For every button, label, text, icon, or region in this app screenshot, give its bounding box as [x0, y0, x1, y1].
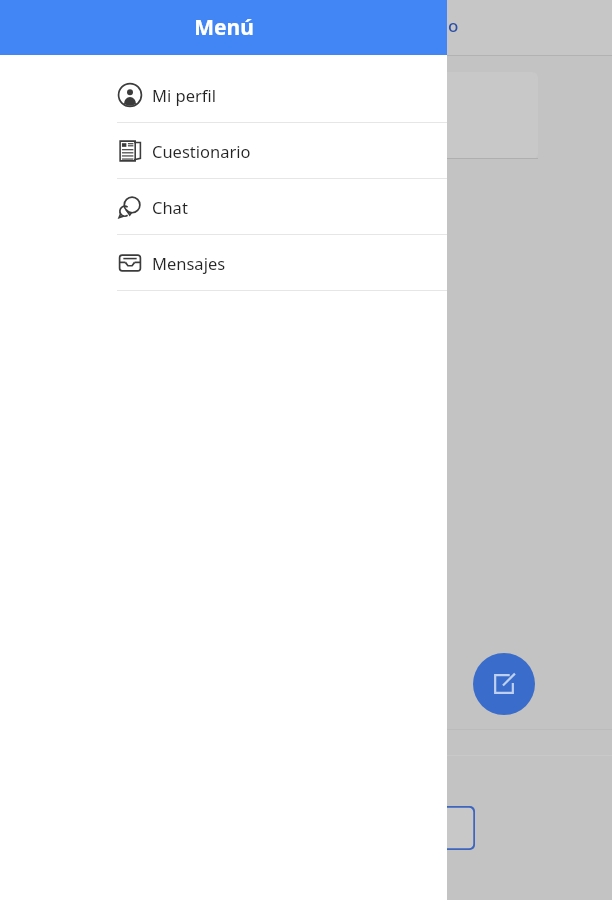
button[interactable]: Chat	[0, 179, 447, 234]
staticText: Mi perfil	[152, 84, 216, 106]
button[interactable]: Mi perfil	[0, 67, 447, 122]
staticText: Cuestionario	[152, 140, 251, 162]
button[interactable]: Compose	[473, 653, 535, 715]
staticText: Chat	[152, 196, 188, 218]
staticText: Menú	[194, 13, 254, 42]
button[interactable]: >	[372, 806, 475, 850]
staticText: Mensajes	[152, 252, 226, 274]
staticText: o	[448, 14, 459, 37]
button[interactable]: Mensajes	[0, 235, 447, 290]
button[interactable]: Cuestionario	[0, 123, 447, 178]
